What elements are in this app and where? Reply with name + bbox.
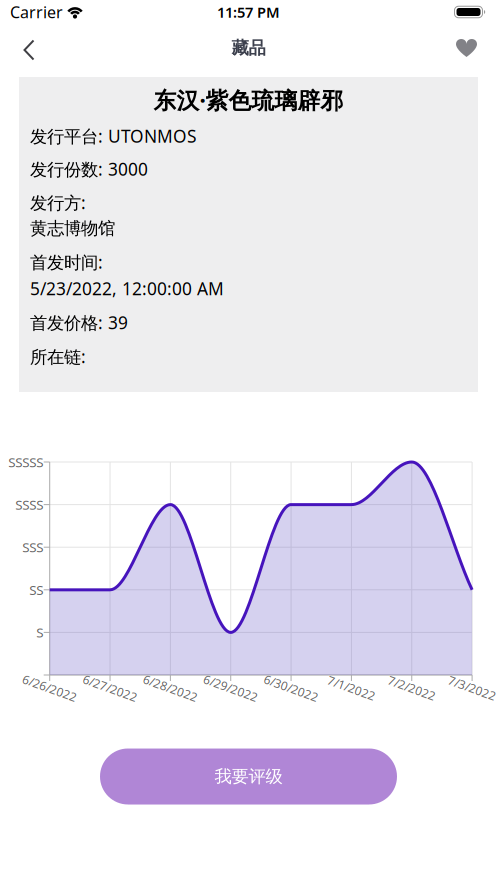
staticText: 藏品: [231, 37, 265, 59]
button[interactable]: Favorite: [444, 26, 488, 70]
staticText: SSSSS: [8, 453, 43, 471]
staticText: SSS: [22, 538, 43, 556]
staticText: SSSS: [15, 496, 43, 513]
staticText: 7/1/2022: [326, 680, 376, 696]
staticText: 首发价格: 39: [30, 311, 128, 334]
staticText: 7/3/2022: [447, 680, 497, 696]
staticText: 11:57 PM: [217, 2, 280, 22]
staticText: 6/26/2022: [21, 680, 78, 696]
staticText: 6/27/2022: [81, 680, 138, 696]
staticText: SS: [29, 581, 43, 599]
staticText: 7/2/2022: [387, 680, 437, 696]
staticText: 5/23/2022, 12:00:00 AM: [30, 277, 224, 300]
staticText: 首发时间:: [30, 250, 103, 273]
staticText: Carrier: [10, 1, 63, 23]
staticText: 发行份数: 3000: [30, 157, 148, 180]
staticText: S: [36, 623, 43, 641]
staticText: 6/30/2022: [263, 680, 320, 696]
staticText: 发行平台: UTONMOS: [30, 124, 197, 147]
staticText: 我要评级: [214, 766, 282, 787]
button[interactable]: Back: [7, 28, 51, 72]
staticText: 东汉·紫色琉璃辟邪: [153, 85, 343, 115]
staticText: 6/29/2022: [202, 680, 259, 696]
button[interactable]: 我要评级: [100, 748, 397, 804]
staticText: 黄志博物馆: [30, 218, 115, 239]
staticText: 6/28/2022: [142, 680, 199, 696]
staticText: 发行方:: [30, 191, 86, 214]
staticText: 所在链:: [30, 345, 86, 368]
